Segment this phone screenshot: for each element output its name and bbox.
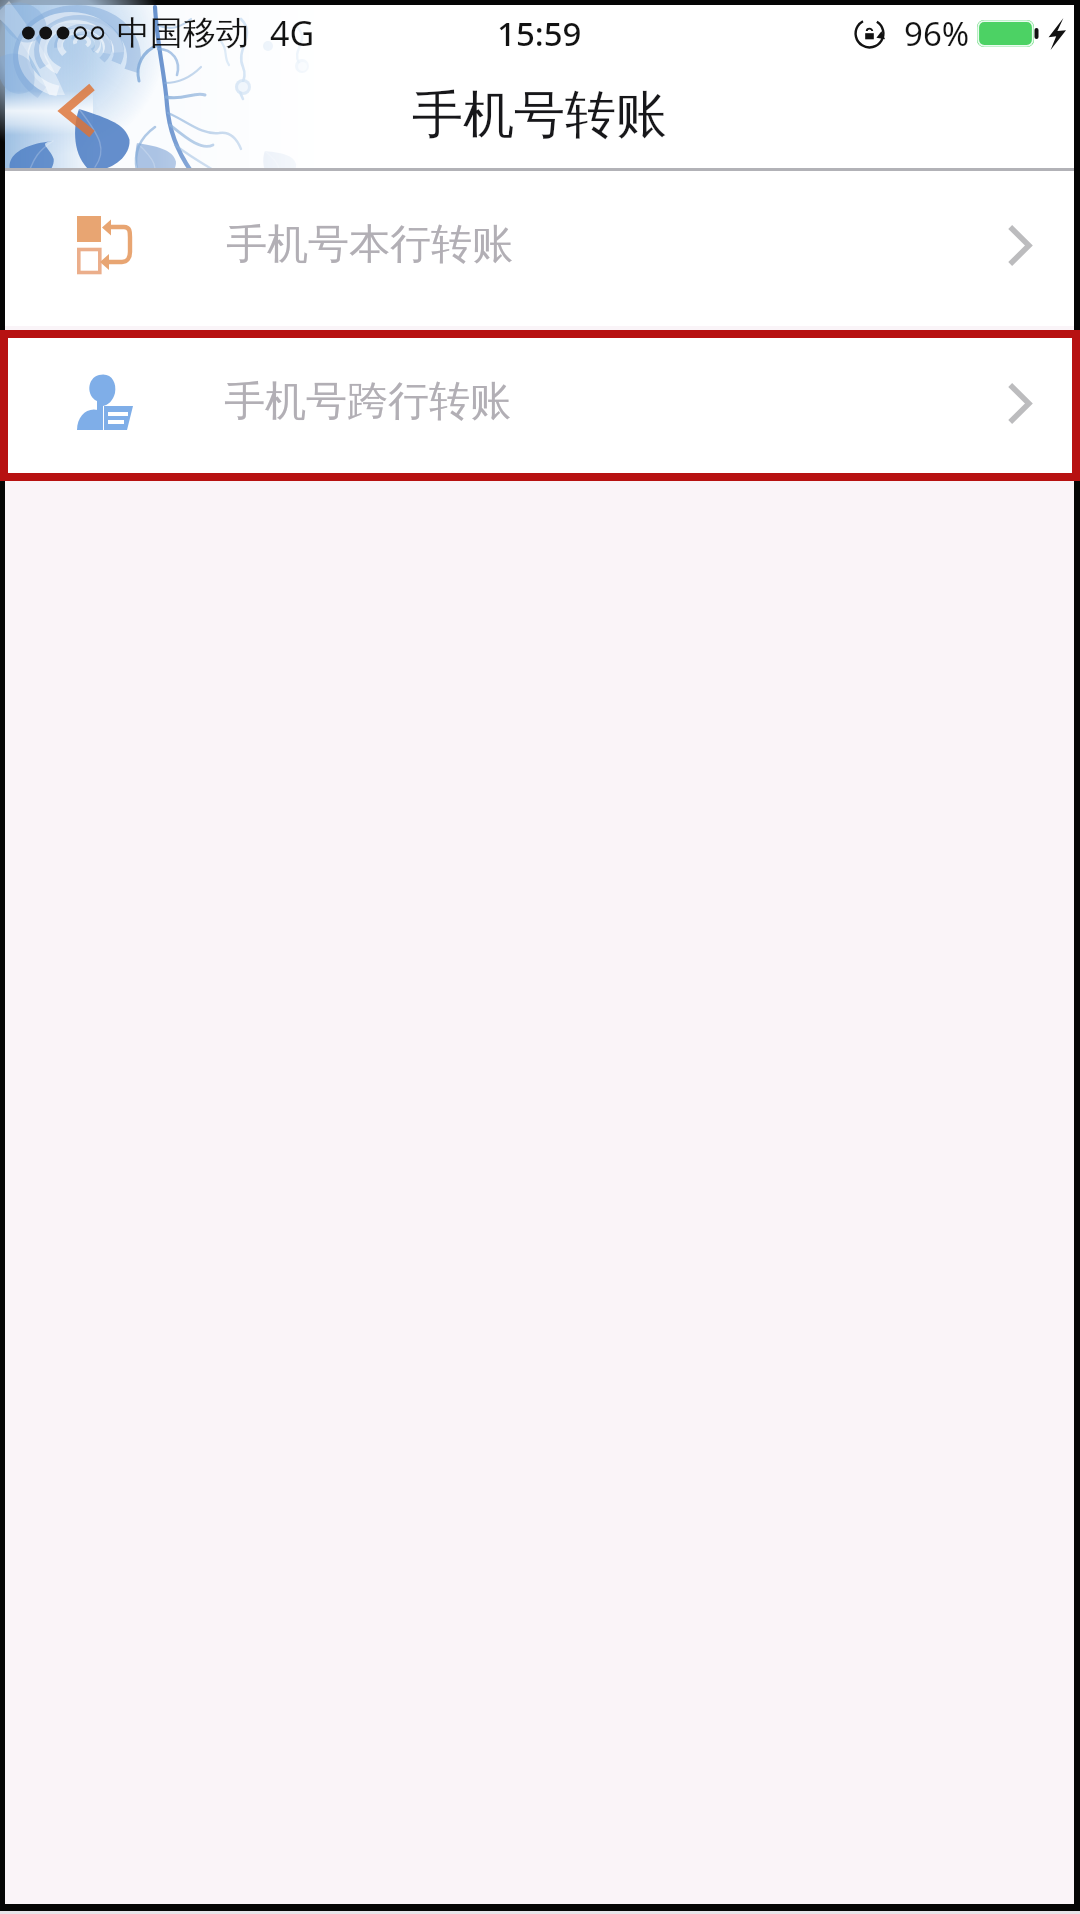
staticText: 手机号跨行转账 (224, 376, 511, 428)
staticText: 手机号本行转账 (226, 219, 513, 271)
staticText: 15:59 (497, 11, 582, 56)
button[interactable]: Back (43, 69, 107, 153)
button[interactable]: 手机号本行转账 (5, 171, 1074, 326)
staticText: 4G (270, 10, 315, 56)
button[interactable]: 手机号跨行转账 (5, 337, 1074, 475)
staticText: 手机号转账 (412, 83, 667, 147)
staticText: 中国移动 (117, 12, 249, 54)
staticText: 96% (904, 11, 970, 56)
